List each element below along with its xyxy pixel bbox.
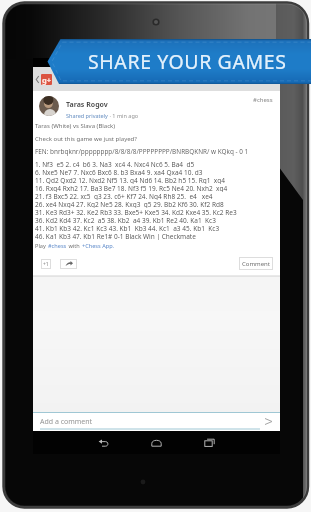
staticText: 41. Kb1 Kb3 42. Kc1 Kc3 43. Kb1 Kb3 44. … (35, 224, 220, 232)
staticText: 1. Nf3 e5 2. c4 b6 3. Na3 xc4 4. Nxc4 Nc… (35, 160, 195, 168)
staticText: 46. Ka1 Kb3 47. Kb1 Re1# 0-1 Black Win |… (35, 232, 196, 240)
staticText: 21. f3 Bxc5 22. xc5 g3 23. c6+ Kf7 24. N… (35, 192, 213, 200)
button[interactable]: Add a comment (40, 417, 264, 427)
button[interactable]: +Chess App. (82, 242, 115, 250)
staticText: 16. Rxg4 Rxh2 17. Ba3 Be7 18. Nf3 f5 19.… (35, 184, 228, 192)
staticText: FEN: bnrbqknr/pppppppp/8/8/8/8/PPPPPPPP/… (35, 147, 249, 156)
staticText: Play (35, 242, 48, 250)
staticText: · 1 min ago (108, 112, 139, 119)
staticText: #chess (253, 96, 273, 104)
button[interactable]: Comment (239, 257, 273, 270)
button[interactable]: Google Plus, navigate up (35, 74, 52, 85)
button[interactable]: Taras Rogov (66, 100, 108, 110)
button[interactable]: Shared privately (66, 112, 108, 119)
staticText: Check out this game we just played? (35, 135, 137, 143)
button[interactable]: Home (147, 433, 167, 453)
staticText: 11. Qd2 Qxd2 12. Nxd2 Nf5 13. g4 Nd6 14.… (35, 176, 225, 184)
staticText: g+ (42, 75, 52, 85)
staticText: 31. Ke3 Rd3+ 32. Ke2 Rb3 33. Bxe5+ Kxe5 … (35, 208, 237, 216)
button[interactable]: Recents (200, 433, 220, 453)
staticText: Taras (White) vs Slava (Black) (35, 122, 116, 130)
staticText: 36. Kd2 Kd4 37. Kc2 a5 38. Kb2 a4 39. Kb… (35, 216, 216, 224)
button[interactable]: Plus one (41, 259, 51, 269)
button[interactable]: #chess (48, 242, 67, 250)
staticText: with (67, 242, 82, 250)
staticText: 6. Nxe5 Ne7 7. Nxc6 Bxc6 8. b3 Bxa4 9. x… (35, 168, 203, 176)
staticText: Comment (242, 260, 270, 268)
staticText: Add a comment (40, 417, 93, 427)
button[interactable]: Send (264, 417, 273, 426)
button[interactable]: Share (60, 259, 77, 269)
staticText: +1 (43, 261, 49, 268)
button[interactable]: Back (94, 433, 114, 453)
staticText: SHARE YOUR GAMES (88, 48, 287, 75)
staticText: 26. xe4 Nxg4 27. Kg2 Ne5 28. Kxg3 g5 29.… (35, 200, 224, 208)
